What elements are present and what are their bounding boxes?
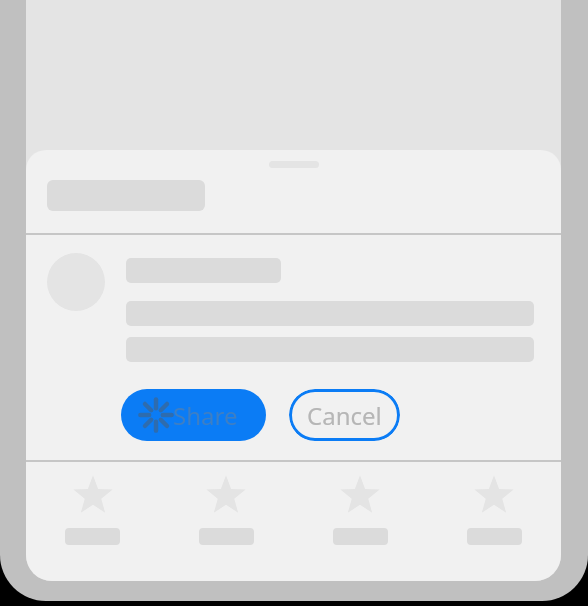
- button[interactable]: Tab 2: [159, 474, 293, 581]
- staticText: Share: [173, 399, 238, 432]
- staticText: Cancel: [307, 399, 382, 432]
- button[interactable]: Tab 3: [293, 474, 427, 581]
- button[interactable]: Tab 1: [26, 474, 159, 581]
- button[interactable]: Tab 4: [427, 474, 561, 581]
- button[interactable]: Share: [121, 389, 266, 441]
- button[interactable]: Cancel: [289, 389, 400, 441]
